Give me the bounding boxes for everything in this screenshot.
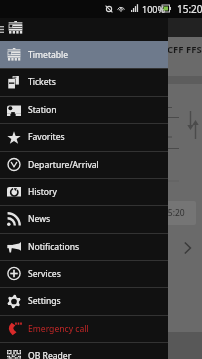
staticText: History [28, 186, 57, 198]
button[interactable]: Settings [0, 287, 168, 315]
staticText: Emergency call [28, 323, 89, 335]
button[interactable]: Departure/Arrival [0, 151, 168, 178]
staticText: QB Reader [28, 350, 72, 359]
staticText: Services [28, 268, 61, 280]
button[interactable]: Notifications [0, 233, 168, 260]
other: Next [184, 242, 191, 254]
staticText: Timetable [28, 49, 69, 61]
staticText: News [28, 213, 51, 225]
staticText: Settings [28, 295, 61, 307]
staticText: Departure/Arrival [28, 159, 99, 171]
button[interactable]: Services [0, 260, 168, 287]
button[interactable]: News [0, 205, 168, 233]
button[interactable]: Open navigation menu [0, 18, 6, 41]
button[interactable]: 15:20 [152, 201, 196, 225]
button[interactable]: Tickets [0, 68, 168, 96]
staticText: Notifications [28, 241, 80, 253]
button[interactable]: Timetable [0, 41, 168, 68]
button[interactable]: Station [0, 96, 168, 123]
staticText: Tickets [28, 76, 56, 88]
staticText: Favorites [28, 131, 65, 143]
staticText: CFF FFS [167, 43, 202, 56]
staticText: 15:20 [163, 207, 185, 219]
button[interactable]: Favorites [0, 123, 168, 151]
staticText: 100% [142, 3, 165, 15]
button[interactable]: History [0, 178, 168, 205]
staticText: Station [28, 104, 57, 116]
staticText: 15:20 [177, 2, 202, 16]
button[interactable]: Emergency call [0, 315, 168, 342]
button[interactable]: QB Reader [0, 342, 168, 359]
